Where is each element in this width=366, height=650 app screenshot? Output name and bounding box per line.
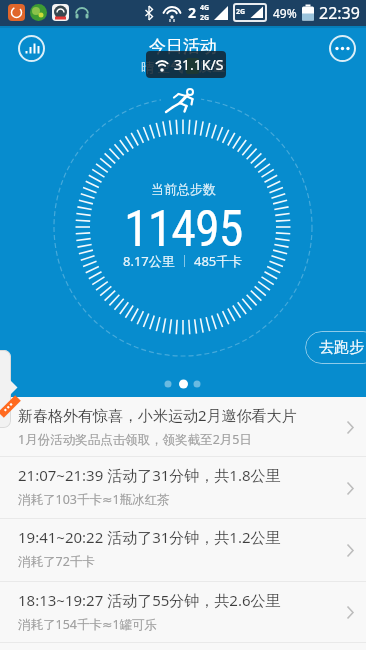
staticText: 8.17公里	[123, 252, 175, 270]
staticText: 质量	[199, 58, 225, 74]
staticText: 今日活动	[149, 36, 217, 57]
staticText: 2G	[236, 7, 246, 17]
staticText: 18:13~19:27 活动了55分钟，共2.6公里	[18, 590, 281, 610]
staticText: 22:39	[319, 2, 360, 24]
button[interactable]	[329, 35, 356, 62]
staticText: 31.1K/S	[174, 55, 224, 74]
staticText: 晴 空气	[141, 58, 184, 76]
button[interactable]: 新春格外有惊喜，小米运动2月邀你看大片	[0, 397, 366, 457]
staticText: 新春格外有惊喜，小米运动2月邀你看大片	[18, 405, 297, 425]
staticText: 消耗了103千卡≈1瓶冰红茶	[18, 491, 170, 508]
button[interactable]: 19:41~20:22 活动了31分钟，共1.2公里	[0, 519, 366, 582]
staticText: 2G	[200, 13, 210, 23]
staticText: 49%	[273, 5, 297, 21]
staticText: 4G	[200, 3, 210, 13]
button[interactable]	[0, 350, 30, 428]
staticText: 11495	[124, 200, 243, 259]
staticText: 消耗了154千卡≈1罐可乐	[18, 616, 158, 633]
button[interactable]: 去跑步	[305, 331, 366, 364]
staticText: 消耗了72千卡	[18, 553, 95, 570]
button[interactable]: 18:13~19:27 活动了55分钟，共2.6公里	[0, 582, 366, 643]
staticText: 当前总步数	[151, 181, 216, 197]
staticText: 19:41~20:22 活动了31分钟，共1.2公里	[18, 527, 281, 547]
staticText: 485千卡	[194, 252, 243, 270]
button[interactable]: 21:07~21:39 活动了31分钟，共1.8公里	[0, 457, 366, 519]
staticText: 去跑步	[319, 338, 364, 357]
staticText: 2	[188, 3, 197, 22]
button[interactable]	[18, 35, 45, 62]
staticText: 1月份活动奖品点击领取，领奖截至2月5日	[18, 431, 252, 448]
staticText: 21:07~21:39 活动了31分钟，共1.8公里	[18, 465, 281, 485]
